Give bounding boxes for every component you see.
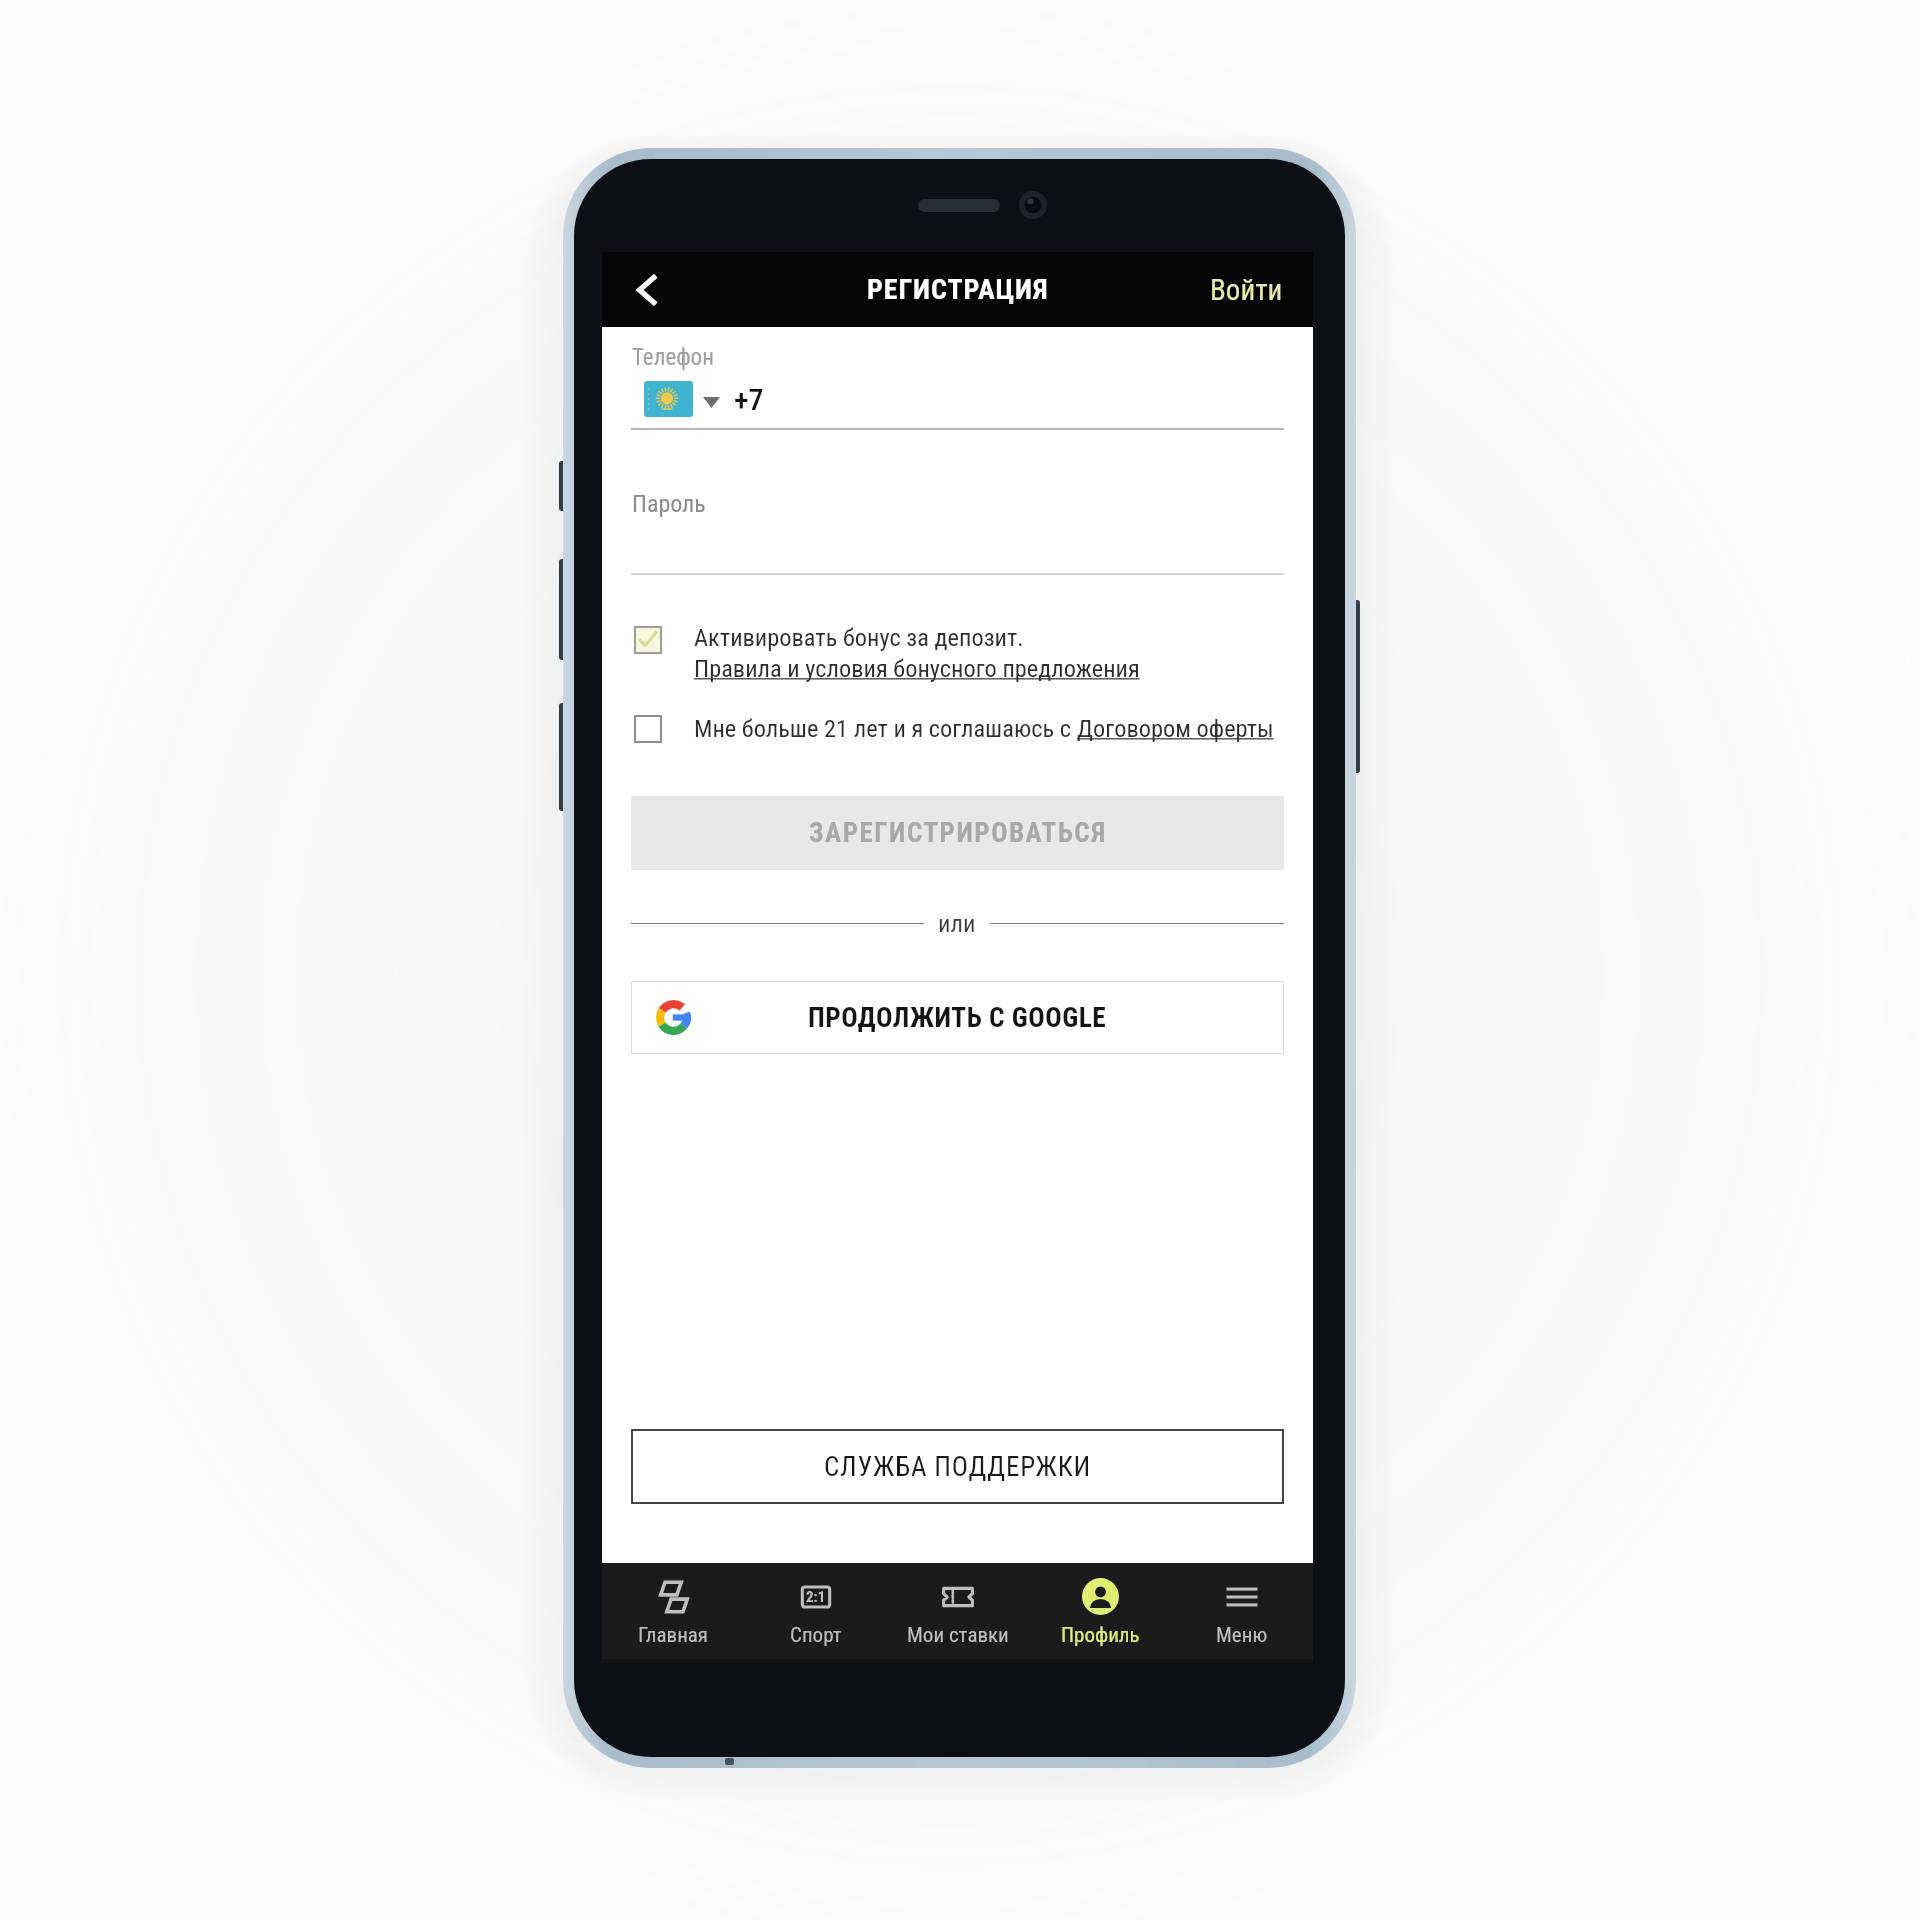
staticText: Пароль: [632, 490, 706, 518]
staticText: Телефон: [632, 344, 714, 371]
button[interactable]: 2:1: [745, 1563, 887, 1659]
staticText: СЛУЖБА ПОДДЕРЖКИ: [824, 1451, 1092, 1483]
button[interactable]: Меню: [1171, 1563, 1313, 1659]
staticText: Спорт: [790, 1623, 842, 1648]
staticText: Правила и условия бонусного предложения: [694, 654, 1140, 683]
staticText: или: [938, 909, 976, 938]
staticText: ЗАРЕГИСТРИРОВАТЬСЯ: [809, 817, 1107, 849]
button[interactable]: Активировать бонус за депозит.: [634, 623, 1284, 683]
button[interactable]: Select country: [644, 381, 693, 417]
button[interactable]: Профиль: [1029, 1563, 1171, 1659]
button[interactable]: Мои ставки: [887, 1563, 1029, 1659]
staticText: Договором оферты: [1077, 714, 1274, 743]
staticText: Главная: [638, 1623, 709, 1648]
button[interactable]: Главная: [602, 1563, 745, 1659]
button[interactable]: СЛУЖБА ПОДДЕРЖКИ: [631, 1429, 1284, 1504]
staticText: Войти: [1210, 273, 1283, 307]
button[interactable]: Пароль: [631, 482, 1284, 575]
staticText: Меню: [1216, 1623, 1268, 1648]
button[interactable]: ПРОДОЛЖИТЬ С GOOGLE: [631, 981, 1284, 1054]
button[interactable]: Мне больше 21 лет и я соглашаюсь с: [634, 714, 1284, 743]
staticText: 2:1: [806, 1588, 826, 1606]
staticText: Мне больше 21 лет и я соглашаюсь с: [694, 714, 1077, 743]
staticText: ПРОДОЛЖИТЬ С GOOGLE: [808, 1002, 1107, 1034]
button[interactable]: ЗАРЕГИСТРИРОВАТЬСЯ: [631, 796, 1284, 870]
staticText: Мои ставки: [907, 1623, 1009, 1648]
staticText: РЕГИСТРАЦИЯ: [867, 273, 1049, 306]
staticText: Профиль: [1061, 1623, 1140, 1648]
staticText: +7: [734, 382, 764, 417]
staticText: Активировать бонус за депозит.: [694, 623, 1024, 652]
button[interactable]: Телефон: [631, 338, 1284, 430]
button[interactable]: Войти: [1186, 252, 1313, 327]
button[interactable]: Back: [602, 252, 688, 327]
